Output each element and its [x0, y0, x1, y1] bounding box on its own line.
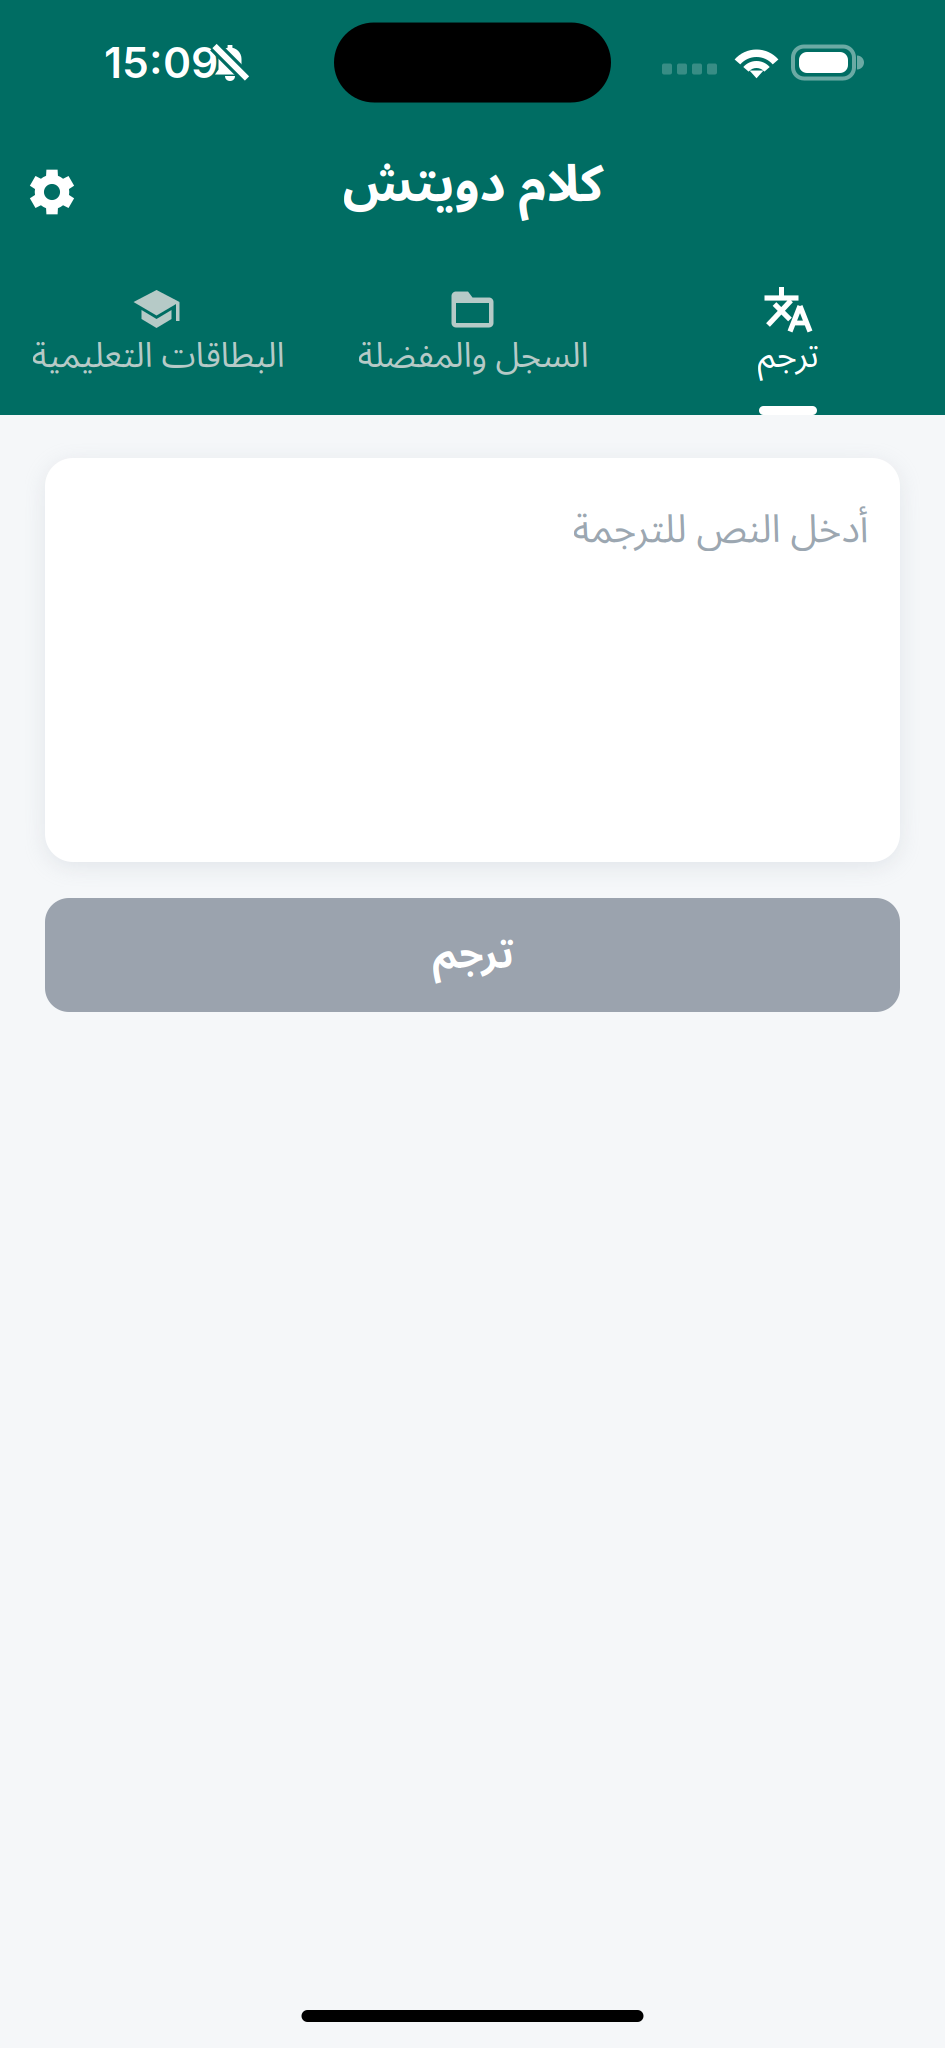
button[interactable]: السجل والمفضلة: [315, 256, 630, 404]
button[interactable]: ترجم: [45, 898, 900, 1012]
button[interactable]: البطاقات التعليمية: [0, 256, 315, 404]
staticText: البطاقات التعليمية: [31, 319, 284, 393]
staticText: كلام دويتش: [342, 131, 603, 238]
staticText: 15:09: [104, 37, 218, 88]
button[interactable]: ترجم: [630, 256, 945, 404]
staticText: ترجم: [432, 913, 513, 997]
staticText: السجل والمفضلة: [357, 319, 588, 393]
staticText: ترجم: [757, 319, 818, 393]
button[interactable]: Settings: [0, 140, 96, 230]
staticText: أدخل النص للترجمة: [572, 489, 868, 571]
